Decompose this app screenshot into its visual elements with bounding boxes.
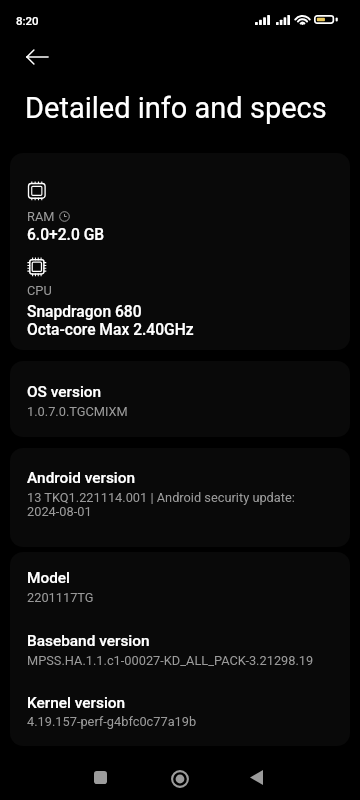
- staticText: Baseband version: [27, 632, 150, 650]
- staticText: 1.0.7.0.TGCMIXM: [27, 404, 128, 419]
- staticText: 13 TKQ1.221114.001 | Android security up…: [27, 490, 295, 519]
- staticText: 4.19.157-perf-g4bfc0c77a19b: [27, 714, 197, 729]
- staticText: Snapdragon 680 Octa-core Max 2.40GHz: [27, 303, 194, 339]
- staticText: Detailed info and specs: [25, 91, 327, 125]
- staticText: MPSS.HA.1.1.c1-00027-KD_ALL_PACK-3.21298…: [27, 653, 314, 668]
- button[interactable]: RAM: [10, 153, 350, 350]
- button[interactable]: Android version: [10, 448, 350, 547]
- button[interactable]: Back: [234, 755, 279, 800]
- button[interactable]: Navigate up: [13, 39, 61, 74]
- staticText: 8:20: [16, 14, 39, 27]
- staticText: RAM: [27, 209, 55, 224]
- button[interactable]: OS version: [10, 361, 350, 437]
- button[interactable]: Home: [157, 756, 202, 800]
- staticText: Android version: [27, 469, 136, 487]
- button[interactable]: Recent apps: [78, 755, 123, 800]
- staticText: OS version: [27, 383, 102, 401]
- staticText: 6.0+2.0 GB: [27, 226, 105, 244]
- button[interactable]: Model: [10, 552, 350, 746]
- staticText: Model: [27, 569, 71, 587]
- staticText: Kernel version: [27, 694, 126, 712]
- staticText: CPU: [27, 283, 52, 298]
- staticText: 2201117TG: [27, 590, 94, 605]
